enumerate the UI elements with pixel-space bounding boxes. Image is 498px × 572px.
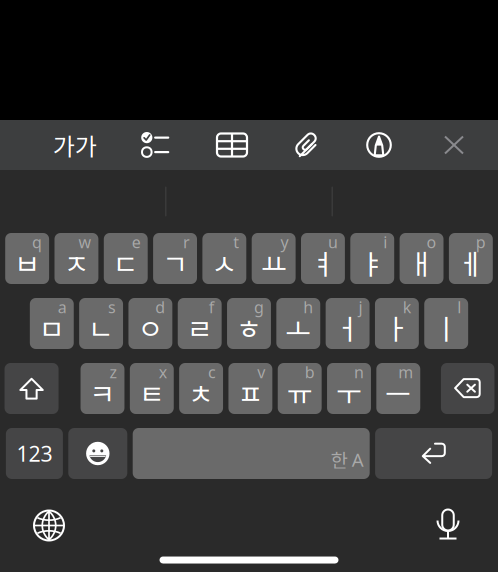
- staticText: ㅌ: [139, 372, 165, 413]
- staticText: g: [254, 296, 264, 318]
- staticText: 한: [331, 446, 348, 473]
- button[interactable]: y: [252, 233, 296, 284]
- button[interactable]: Shift: [5, 363, 59, 414]
- staticText: ㄷ: [113, 242, 139, 283]
- staticText: ㅊ: [188, 372, 214, 413]
- staticText: v: [257, 361, 265, 383]
- staticText: ㅕ: [310, 242, 336, 283]
- staticText: r: [183, 231, 190, 253]
- staticText: d: [155, 296, 165, 318]
- button[interactable]: Next keyboard: [19, 501, 79, 549]
- button[interactable]: r: [153, 233, 197, 284]
- staticText: ㅍ: [237, 372, 263, 413]
- button[interactable]: 가가: [33, 120, 117, 170]
- button[interactable]: u: [301, 233, 345, 284]
- button[interactable]: z: [81, 363, 124, 414]
- button[interactable]: w: [54, 233, 98, 284]
- staticText: ㅗ: [285, 307, 311, 348]
- staticText: n: [354, 361, 364, 383]
- staticText: h: [303, 296, 313, 318]
- button[interactable]: Delete: [441, 363, 494, 414]
- staticText: ㅎ: [236, 307, 262, 348]
- button[interactable]: Emoji: [68, 428, 127, 479]
- staticText: ㄹ: [187, 307, 213, 348]
- button[interactable]: p: [449, 233, 493, 284]
- button[interactable]: Return: [375, 428, 492, 479]
- staticText: ㅅ: [211, 242, 237, 283]
- staticText: ㅡ: [385, 372, 411, 413]
- staticText: 123: [16, 439, 52, 468]
- button[interactable]: s: [79, 298, 123, 349]
- staticText: ㅋ: [89, 372, 115, 413]
- staticText: ㅔ: [458, 242, 484, 283]
- button[interactable]: n: [327, 363, 371, 414]
- staticText: c: [208, 361, 216, 383]
- button[interactable]: e: [104, 233, 148, 284]
- button[interactable]: j: [326, 298, 370, 349]
- staticText: l: [457, 296, 461, 318]
- button[interactable]: o: [400, 233, 443, 284]
- button[interactable]: q: [5, 233, 49, 284]
- button[interactable]: m: [376, 363, 420, 414]
- staticText: A: [352, 447, 364, 472]
- button[interactable]: Checklist: [117, 120, 193, 170]
- staticText: i: [383, 231, 387, 253]
- staticText: u: [328, 231, 338, 253]
- staticText: m: [398, 361, 413, 383]
- button[interactable]: k: [375, 298, 419, 349]
- staticText: x: [159, 361, 167, 383]
- staticText: o: [426, 231, 436, 253]
- button[interactable]: 123: [6, 428, 63, 479]
- staticText: s: [108, 296, 116, 318]
- staticText: w: [78, 231, 91, 253]
- staticText: ㅣ: [433, 307, 459, 348]
- staticText: t: [233, 231, 239, 253]
- staticText: ㅇ: [137, 307, 163, 348]
- staticText: q: [32, 231, 42, 253]
- button[interactable]: Space: [133, 428, 370, 479]
- staticText: ㅏ: [384, 307, 410, 348]
- staticText: ㅐ: [409, 242, 435, 283]
- button[interactable]: Markup: [343, 120, 415, 170]
- button[interactable]: Dictation: [418, 501, 478, 549]
- button[interactable]: g: [227, 298, 271, 349]
- button[interactable]: Attach: [271, 120, 343, 170]
- staticText: ㄱ: [162, 242, 188, 283]
- staticText: 가가: [53, 128, 97, 162]
- button[interactable]: Table: [193, 120, 271, 170]
- staticText: f: [209, 296, 215, 318]
- button[interactable]: t: [202, 233, 246, 284]
- staticText: b: [305, 361, 315, 383]
- button[interactable]: l: [424, 298, 468, 349]
- staticText: e: [132, 231, 141, 253]
- staticText: ㅛ: [261, 242, 287, 283]
- button[interactable]: f: [178, 298, 222, 349]
- staticText: ㅁ: [39, 307, 65, 348]
- staticText: ㅓ: [335, 307, 361, 348]
- staticText: ㅠ: [287, 372, 313, 413]
- staticText: p: [476, 231, 486, 253]
- staticText: ㄴ: [88, 307, 114, 348]
- button[interactable]: b: [278, 363, 322, 414]
- staticText: z: [109, 361, 117, 383]
- button[interactable]: i: [350, 233, 394, 284]
- button[interactable]: c: [179, 363, 223, 414]
- button[interactable]: a: [30, 298, 74, 349]
- staticText: y: [281, 231, 289, 253]
- button[interactable]: x: [130, 363, 174, 414]
- button[interactable]: h: [276, 298, 320, 349]
- staticText: k: [403, 296, 412, 318]
- button[interactable]: v: [228, 363, 272, 414]
- staticText: ㅈ: [63, 242, 89, 283]
- staticText: ㅜ: [336, 372, 362, 413]
- staticText: ㅑ: [359, 242, 385, 283]
- staticText: ㅂ: [14, 242, 40, 283]
- button[interactable]: Close: [423, 120, 485, 170]
- staticText: j: [359, 296, 363, 318]
- button[interactable]: d: [128, 298, 172, 349]
- staticText: a: [58, 296, 67, 318]
